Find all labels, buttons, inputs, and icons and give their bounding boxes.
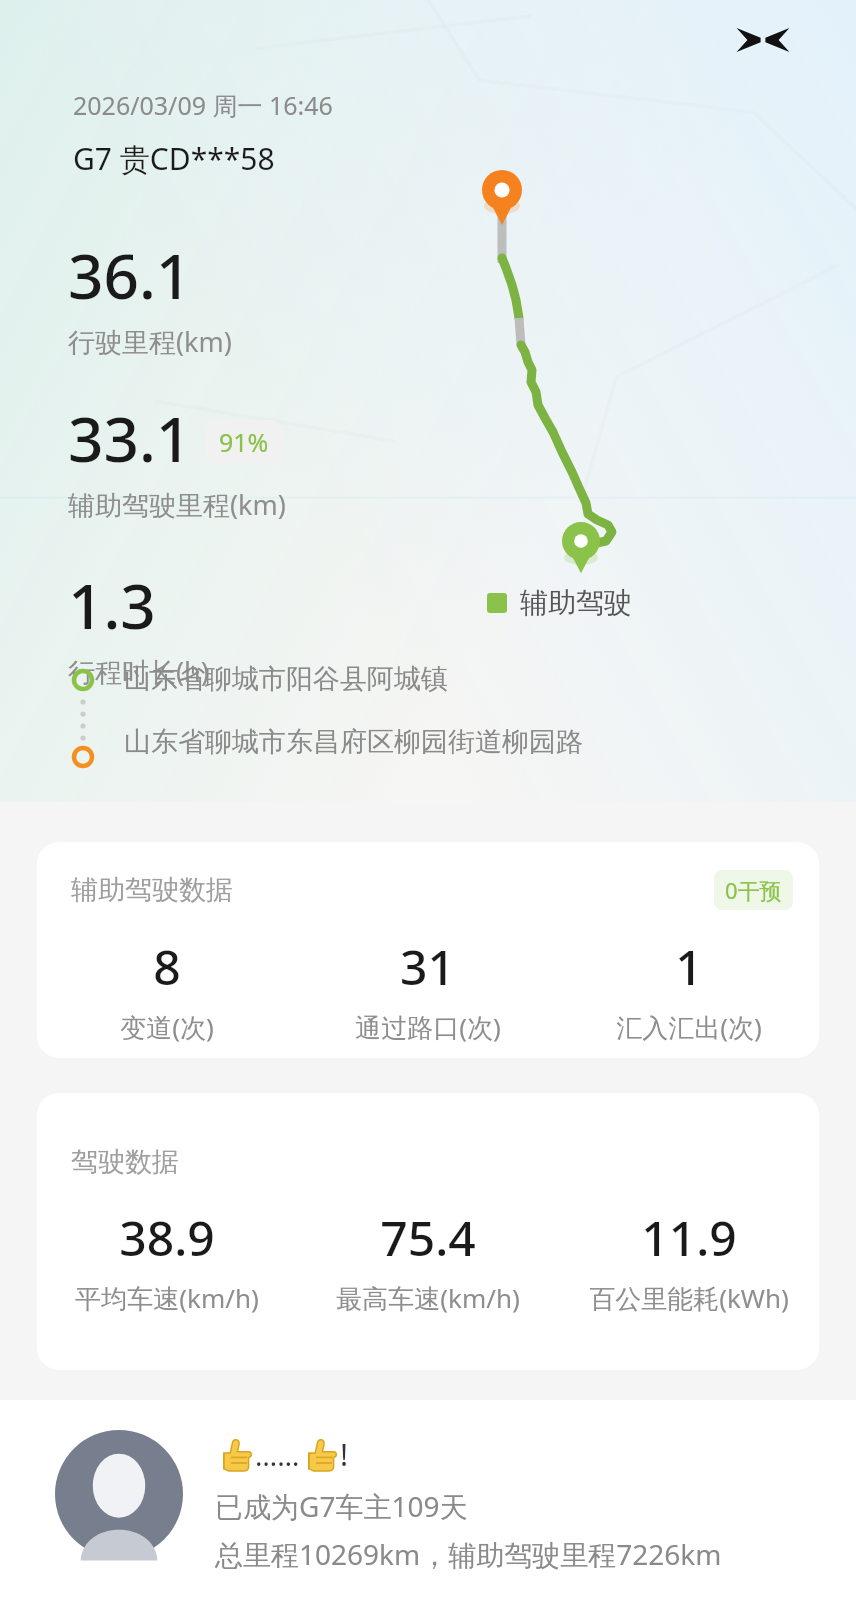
staticText: 行驶里程(km) — [68, 323, 232, 360]
staticText: G7 贵CD***58 — [73, 138, 275, 179]
staticText: 辅助驾驶里程(km) — [68, 486, 286, 523]
staticText: 辅助驾驶 — [520, 585, 632, 620]
staticText: …… — [255, 1436, 300, 1474]
staticText: 变道(次) — [120, 1009, 214, 1045]
staticText: 汇入汇出(次) — [616, 1009, 762, 1045]
staticText: 38.9 — [119, 1205, 215, 1270]
staticText: ! — [340, 1434, 349, 1475]
staticText: 行程时长(h) — [68, 653, 209, 690]
staticText: 33.1 — [68, 396, 192, 480]
staticText: 91% — [219, 425, 269, 459]
staticText: 辅助驾驶数据 — [71, 873, 233, 907]
staticText: 百公里能耗(kWh) — [589, 1280, 789, 1316]
staticText: 已成为G7车主109天 — [215, 1487, 468, 1525]
staticText: 75.4 — [380, 1205, 476, 1270]
staticText: 总里程10269km，辅助驾驶里程7226km — [215, 1535, 722, 1573]
staticText: 最高车速(km/h) — [336, 1280, 520, 1316]
staticText: 11.9 — [641, 1205, 737, 1270]
staticText: 36.1 — [68, 233, 192, 317]
staticText: 8 — [153, 934, 181, 999]
staticText: 2026/03/09 周一 16:46 — [73, 88, 333, 122]
staticText: 驾驶数据 — [71, 1145, 179, 1179]
staticText: 31 — [400, 934, 455, 999]
staticText: 通过路口(次) — [355, 1009, 501, 1045]
staticText: 山东省聊城市阳谷县阿城镇 — [124, 662, 448, 696]
staticText: 山东省聊城市东昌府区柳园街道柳园路 — [124, 725, 583, 759]
button[interactable]: XPeng logo — [733, 20, 793, 60]
staticText: 1 — [675, 934, 703, 999]
button[interactable]: 驾驶数据 — [37, 1093, 819, 1370]
staticText: 1.3 — [68, 563, 156, 647]
staticText: 0干预 — [725, 875, 782, 905]
button[interactable]: 辅助驾驶数据 — [37, 842, 819, 1058]
staticText: 平均车速(km/h) — [75, 1280, 259, 1316]
